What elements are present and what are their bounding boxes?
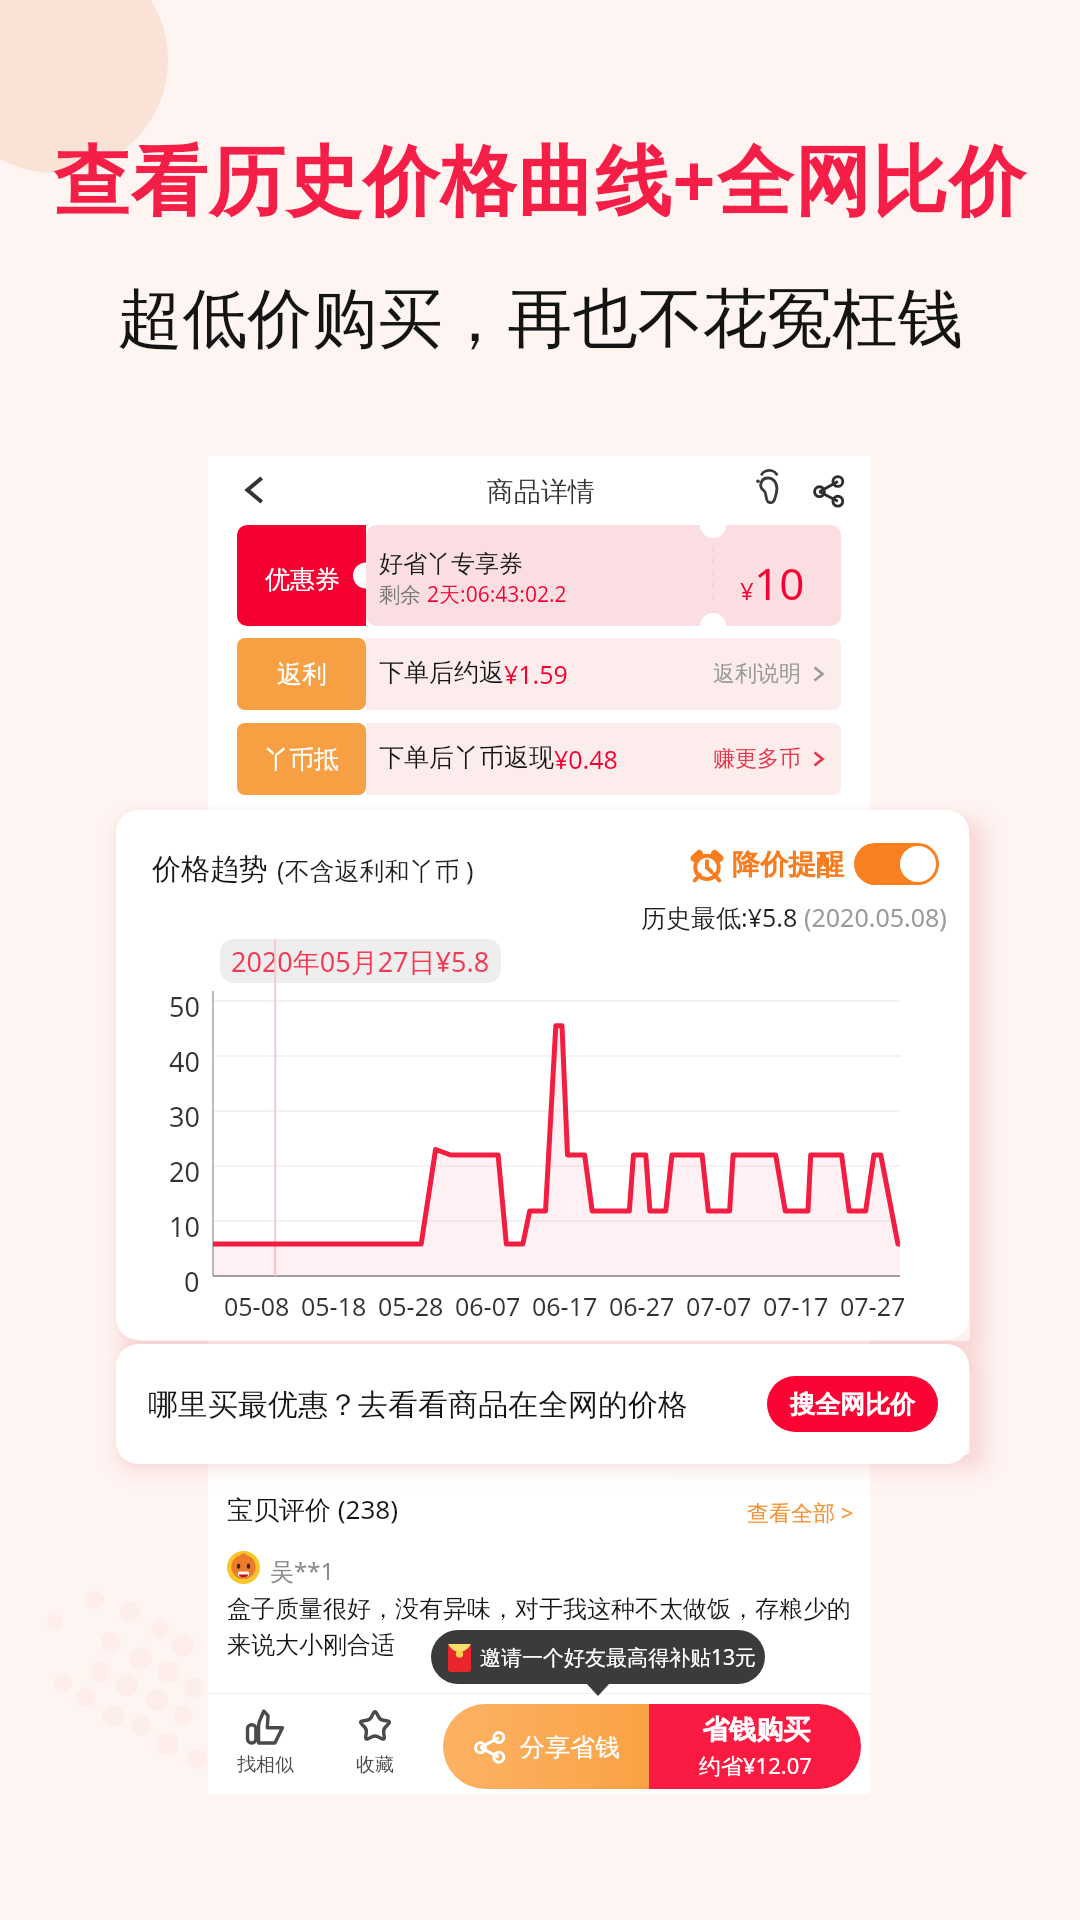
staticText: 下单后约返 bbox=[379, 657, 504, 688]
staticText: 找相似 bbox=[237, 1753, 294, 1777]
button[interactable]: Customer service bbox=[746, 468, 786, 508]
button[interactable]: Share bbox=[812, 474, 846, 508]
staticText: 收藏 bbox=[356, 1753, 394, 1777]
button[interactable]: 搜全网比价 bbox=[767, 1376, 938, 1432]
staticText: 省钱购买 bbox=[702, 1713, 810, 1747]
staticText: 剩余 bbox=[379, 580, 427, 609]
staticText: 优惠券 bbox=[265, 564, 340, 595]
staticText: 好省丫专享券 bbox=[379, 549, 523, 579]
staticText: 0 bbox=[184, 1263, 200, 1300]
button[interactable]: 找相似 bbox=[236, 1708, 294, 1777]
staticText: 05-18 bbox=[301, 1289, 367, 1323]
staticText: ¥1.59 bbox=[504, 657, 568, 691]
staticText: ¥ bbox=[740, 574, 754, 607]
staticText: 07-07 bbox=[686, 1289, 752, 1323]
staticText: 30 bbox=[169, 1098, 200, 1135]
staticText: (2020.05.08) bbox=[804, 900, 947, 934]
staticText: 返利 bbox=[277, 659, 327, 690]
staticText: 返利说明 bbox=[713, 660, 801, 688]
staticText: 降价提醒 bbox=[732, 847, 844, 882]
staticText: 20 bbox=[169, 1153, 200, 1190]
staticText: 06-17 bbox=[532, 1289, 598, 1323]
button[interactable]: 返利 bbox=[237, 638, 841, 710]
staticText: 下单后丫币返现 bbox=[379, 742, 554, 773]
staticText: 07-27 bbox=[840, 1289, 906, 1323]
staticText: 价格趋势 bbox=[152, 851, 268, 888]
button[interactable]: 查看全部 > bbox=[747, 1497, 854, 1527]
staticText: 40 bbox=[169, 1043, 200, 1080]
staticText: 邀请一个好友最高得补贴13元 bbox=[480, 1643, 757, 1672]
staticText: 搜全网比价 bbox=[790, 1389, 915, 1420]
staticText: 哪里买最优惠？去看看商品在全网的价格 bbox=[148, 1386, 688, 1424]
staticText: (不含返利和丫币 ) bbox=[277, 853, 474, 887]
button[interactable]: 收藏 bbox=[355, 1708, 395, 1777]
staticText: 商品详情 bbox=[487, 475, 595, 509]
staticText: 06-07 bbox=[455, 1289, 521, 1323]
staticText: 超低价购买，再也不花冤枉钱 bbox=[0, 278, 1080, 360]
staticText: 10 bbox=[169, 1208, 200, 1245]
button[interactable]: 省钱购买 bbox=[649, 1704, 861, 1789]
staticText: 05-08 bbox=[224, 1289, 290, 1323]
staticText: ¥0.48 bbox=[554, 742, 618, 776]
staticText: 约省¥12.07 bbox=[699, 1750, 812, 1780]
staticText: 2020年05月27日¥5.8 bbox=[231, 943, 490, 980]
button[interactable]: Back bbox=[235, 470, 275, 510]
staticText: 06-27 bbox=[609, 1289, 675, 1323]
button[interactable]: 分享省钱 bbox=[443, 1704, 649, 1789]
staticText: 分享省钱 bbox=[520, 1732, 620, 1763]
staticText: 07-17 bbox=[763, 1289, 829, 1323]
staticText: 2天:06:43:02.2 bbox=[427, 580, 567, 609]
staticText: 吴**1 bbox=[270, 1554, 335, 1587]
staticText: 查看历史价格曲线+全网比价 bbox=[0, 127, 1080, 231]
staticText: 宝贝评价 (238) bbox=[227, 1491, 398, 1527]
button[interactable]: 优惠券 bbox=[237, 525, 841, 626]
staticText: 10 bbox=[754, 553, 805, 613]
staticText: 50 bbox=[169, 988, 200, 1025]
staticText: 赚更多币 bbox=[713, 745, 801, 773]
staticText: 盒子质量很好，没有异味，对于我这种不太做饭，存粮少的 来说大小刚合适 bbox=[227, 1594, 851, 1660]
staticText: 05-28 bbox=[378, 1289, 444, 1323]
button[interactable]: 丫币抵 bbox=[237, 723, 841, 795]
staticText: 丫币抵 bbox=[264, 744, 339, 775]
staticText: 历史最低:¥5.8 bbox=[641, 900, 804, 934]
button[interactable]: 降价提醒 bbox=[690, 843, 939, 885]
